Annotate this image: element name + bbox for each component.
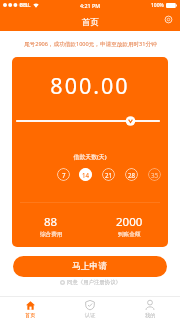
button[interactable]: 21 bbox=[102, 168, 115, 181]
button[interactable]: 7 bbox=[57, 168, 70, 181]
button[interactable]: Amount slider bbox=[16, 115, 160, 127]
button[interactable]: 马上申请 bbox=[13, 256, 167, 277]
staticText: 同意《用户注册协议》 bbox=[67, 279, 121, 286]
staticText: 800.00 bbox=[12, 71, 168, 100]
button[interactable]: 28 bbox=[125, 168, 138, 181]
staticText: 我的 bbox=[145, 312, 156, 319]
staticText: 2000 bbox=[116, 214, 143, 230]
button[interactable]: 我的 bbox=[120, 297, 180, 320]
staticText: 4:21 PM bbox=[80, 2, 101, 9]
staticText: 28 bbox=[128, 171, 136, 179]
staticText: 7 bbox=[62, 171, 66, 179]
button[interactable]: 认证 bbox=[60, 297, 120, 320]
staticText: 马上申请 bbox=[72, 261, 108, 272]
staticText: 认证 bbox=[85, 312, 96, 319]
staticText: 首页 bbox=[25, 312, 36, 319]
button[interactable]: 14 bbox=[79, 168, 92, 181]
staticText: 14 bbox=[82, 171, 90, 179]
staticText: 综合费用 bbox=[40, 231, 63, 238]
staticText: 到账金额 bbox=[118, 231, 141, 238]
button[interactable]: Customer service bbox=[162, 13, 175, 26]
button[interactable]: 35 bbox=[148, 168, 161, 181]
button[interactable]: 首页 bbox=[0, 297, 60, 320]
staticText: BELL bbox=[20, 2, 31, 8]
staticText: 借款天数(天) bbox=[12, 153, 168, 161]
staticText: 21 bbox=[105, 171, 113, 179]
staticText: 首页 bbox=[82, 17, 99, 28]
staticText: 尾号2906，成功借款1000元，申请至放款用时31分钟 bbox=[24, 40, 157, 48]
staticText: 88 bbox=[44, 214, 58, 230]
staticText: 100% bbox=[151, 2, 164, 9]
staticText: 35 bbox=[151, 171, 159, 179]
